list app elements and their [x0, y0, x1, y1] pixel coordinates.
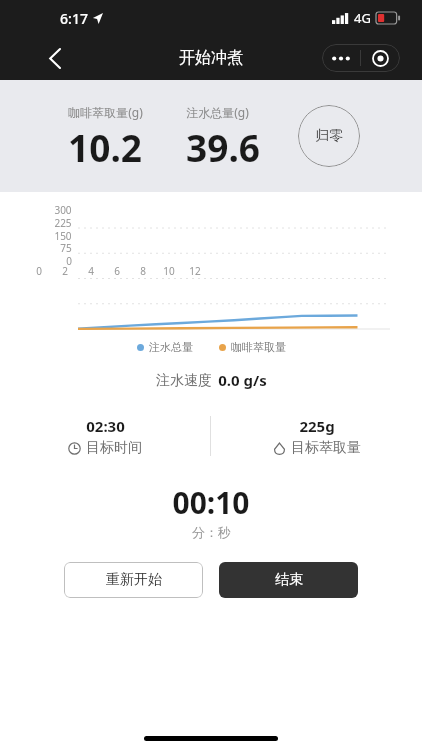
button[interactable]: Target — [361, 44, 400, 72]
staticText: 注水速度 — [156, 372, 212, 390]
staticText: 00:10 — [172, 482, 250, 523]
staticText: 39.6 — [186, 122, 260, 172]
staticText: 02:30 — [86, 416, 125, 436]
button[interactable]: More — [322, 44, 360, 72]
staticText: 目标萃取量 — [291, 439, 361, 457]
staticText: 4G — [354, 9, 371, 27]
staticText: 结束 — [275, 571, 303, 589]
staticText: 6 — [114, 264, 120, 278]
staticText: 150 — [54, 229, 72, 243]
staticText: 75 — [60, 241, 72, 255]
staticText: 10.2 — [68, 122, 142, 172]
staticText: 4 — [88, 264, 94, 278]
staticText: 咖啡萃取量(g) — [68, 104, 143, 120]
staticText: 咖啡萃取量 — [231, 340, 286, 354]
staticText: 注水总量 — [149, 340, 193, 354]
button[interactable]: 结束 — [219, 562, 358, 598]
staticText: 225 — [54, 216, 72, 230]
staticText: 注水总量(g) — [186, 104, 249, 120]
button[interactable]: 归零 — [298, 105, 360, 167]
staticText: 开始冲煮 — [179, 48, 243, 68]
staticText: 6:17 — [60, 9, 88, 28]
staticText: 重新开始 — [106, 571, 162, 589]
staticText: 12 — [189, 264, 201, 278]
button[interactable]: Back — [34, 38, 74, 78]
staticText: 300 — [54, 203, 72, 217]
button[interactable]: 重新开始 — [64, 562, 203, 598]
staticText: 8 — [140, 264, 146, 278]
staticText: 225g — [299, 416, 335, 436]
staticText: 0.0 g/s — [218, 370, 267, 390]
staticText: 0 — [36, 264, 42, 278]
staticText: 目标时间 — [86, 439, 142, 457]
staticText: 0 — [66, 254, 72, 268]
staticText: 归零 — [315, 127, 343, 145]
staticText: 分：秒 — [192, 524, 231, 540]
staticText: 10 — [163, 264, 175, 278]
staticText: 2 — [62, 264, 68, 278]
